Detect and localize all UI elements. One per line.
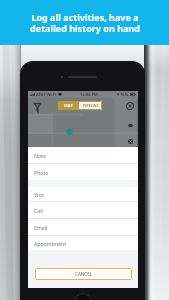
button[interactable]: Appointment: [28, 236, 138, 250]
button[interactable]: MAP: [58, 101, 79, 110]
button[interactable]: Map marker: [125, 120, 135, 130]
staticText: Log all activities, have a detailed hist…: [30, 11, 140, 35]
staticText: Appointment: [34, 240, 67, 247]
staticText: CANCEL: [75, 271, 93, 277]
button[interactable]: My location: [123, 99, 137, 113]
staticText: Photo: [34, 169, 49, 176]
staticText: Call: [34, 207, 43, 214]
button[interactable]: PIPELINE: [79, 101, 102, 110]
staticText: AT&T Wi-Fi: [36, 92, 57, 98]
button[interactable]: CANCEL: [35, 268, 132, 280]
staticText: PIPELINE: [83, 103, 99, 108]
button[interactable]: Photo: [28, 164, 138, 180]
staticText: 12:08 PM: [80, 92, 98, 98]
button[interactable]: Note: [28, 147, 138, 163]
button[interactable]: Visit: [28, 187, 138, 201]
staticText: MAP: [64, 103, 73, 108]
button[interactable]: Call: [28, 202, 138, 218]
button[interactable]: Email: [28, 219, 138, 235]
staticText: Visit: [34, 191, 45, 198]
staticText: 76%: [120, 92, 129, 98]
staticText: Note: [34, 152, 46, 159]
button[interactable]: Filter: [30, 100, 45, 115]
staticText: Email: [34, 224, 48, 231]
button[interactable]: Close: [125, 136, 135, 146]
